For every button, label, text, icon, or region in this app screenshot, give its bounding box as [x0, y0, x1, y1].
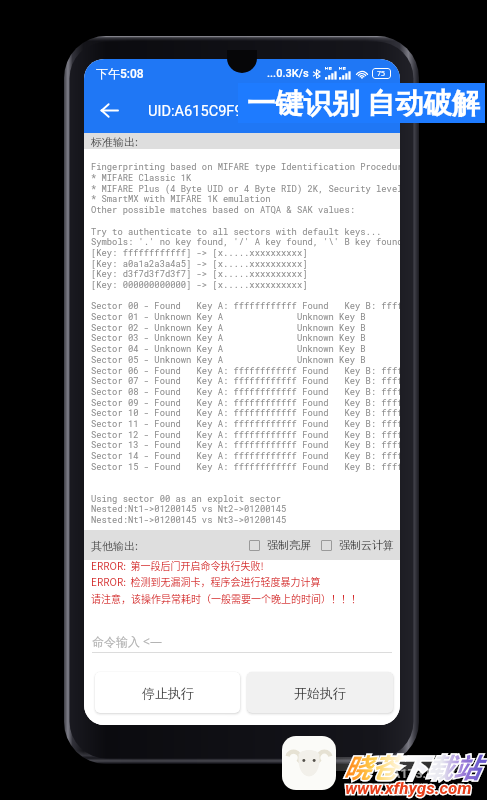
staticText: 晓苍下载站: [343, 746, 480, 786]
staticText: [Key: a0a1a2a3a4a5] -> [x.....xxxxxxxxxx…: [91, 258, 308, 270]
staticText: 强制亮屏: [267, 538, 311, 552]
button[interactable]: 强制云计算: [321, 538, 394, 552]
staticText: ...0.3K/s: [267, 67, 309, 80]
staticText: www.xfhygs.com: [345, 778, 472, 798]
staticText: 75: [377, 69, 386, 79]
staticText: Sector 11 - Found Key A: ffffffffffff Fo…: [91, 418, 400, 430]
staticText: 下午5:08: [96, 66, 144, 81]
staticText: 晓苍下载站: [343, 746, 480, 786]
staticText: Sector 00 - Found Key A: ffffffffffff Fo…: [91, 300, 400, 312]
staticText: Sector 09 - Found Key A: ffffffffffff Fo…: [91, 397, 400, 409]
staticText: 开始执行: [294, 685, 346, 701]
staticText: 命令输入 <—: [92, 633, 162, 649]
staticText: [Key: ffffffffffff] -> [x.....xxxxxxxxxx…: [91, 247, 308, 259]
staticText: Using sector 00 as an exploit sector: [91, 493, 282, 505]
staticText: www.xfhygs.com: [345, 778, 472, 798]
staticText: [Key: d3f7d3f7d3f7] -> [x.....xxxxxxxxxx…: [91, 268, 308, 280]
staticText: 一键识别 自动破解: [247, 83, 480, 122]
staticText: Sector 07 - Found Key A: ffffffffffff Fo…: [91, 375, 400, 387]
staticText: CA173.COM: [383, 766, 456, 781]
button[interactable]: 强制亮屏: [249, 538, 311, 552]
staticText: Try to authenticate to all sectors with …: [91, 226, 382, 238]
staticText: ERROR: 第一段后门开启命令执行失败!: [91, 558, 264, 572]
staticText: * MIFARE Plus (4 Byte UID or 4 Byte RID)…: [91, 183, 400, 195]
staticText: Sector 01 - Unknown Key A Unknown Key B: [91, 311, 366, 323]
staticText: ERROR: 检测到无漏洞卡，程序会进行轻度暴力计算: [91, 574, 321, 588]
staticText: * SmartMX with MIFARE 1K emulation: [91, 193, 271, 205]
staticText: 请注意，该操作异常耗时（一般需要一个晚上的时间）！！！: [91, 591, 361, 605]
staticText: 强制云计算: [339, 538, 394, 552]
staticText: UID:A615C9F9: [148, 102, 243, 119]
staticText: Sector 05 - Unknown Key A Unknown Key B: [91, 354, 366, 366]
staticText: [Key: 000000000000] -> [x.....xxxxxxxxxx…: [91, 279, 308, 291]
staticText: * MIFARE Classic 1K: [91, 172, 192, 184]
staticText: Sector 06 - Found Key A: ffffffffffff Fo…: [91, 365, 400, 377]
button[interactable]: 停止执行: [95, 672, 240, 713]
button[interactable]: 开始执行: [247, 672, 393, 713]
staticText: Nested:Nt1->01200145 vs Nt2->01200145: [91, 503, 287, 515]
staticText: Sector 12 - Found Key A: ffffffffffff Fo…: [91, 429, 400, 441]
staticText: Sector 10 - Found Key A: ffffffffffff Fo…: [91, 407, 400, 419]
staticText: Sector 15 - Found Key A: ffffffffffff Fo…: [91, 461, 400, 473]
staticText: 其他输出:: [91, 538, 138, 553]
staticText: Sector 02 - Unknown Key A Unknown Key B: [91, 322, 366, 334]
staticText: Nested:Nt1->01200145 vs Nt3->01200145: [91, 514, 287, 526]
button[interactable]: Back: [91, 92, 127, 128]
staticText: Other possible matches based on ATQA & S…: [91, 204, 355, 216]
staticText: 标准输出:: [91, 134, 138, 149]
staticText: Sector 13 - Found Key A: ffffffffffff Fo…: [91, 439, 400, 451]
staticText: Fingerprinting based on MIFARE type Iden…: [91, 161, 400, 173]
staticText: Sector 03 - Unknown Key A Unknown Key B: [91, 332, 366, 344]
staticText: Sector 14 - Found Key A: ffffffffffff Fo…: [91, 450, 400, 462]
staticText: Symbols: '.' no key found, '/' A key fou…: [91, 236, 400, 248]
staticText: Sector 08 - Found Key A: ffffffffffff Fo…: [91, 386, 400, 398]
staticText: Sector 04 - Unknown Key A Unknown Key B: [91, 343, 366, 355]
staticText: 停止执行: [142, 685, 194, 701]
